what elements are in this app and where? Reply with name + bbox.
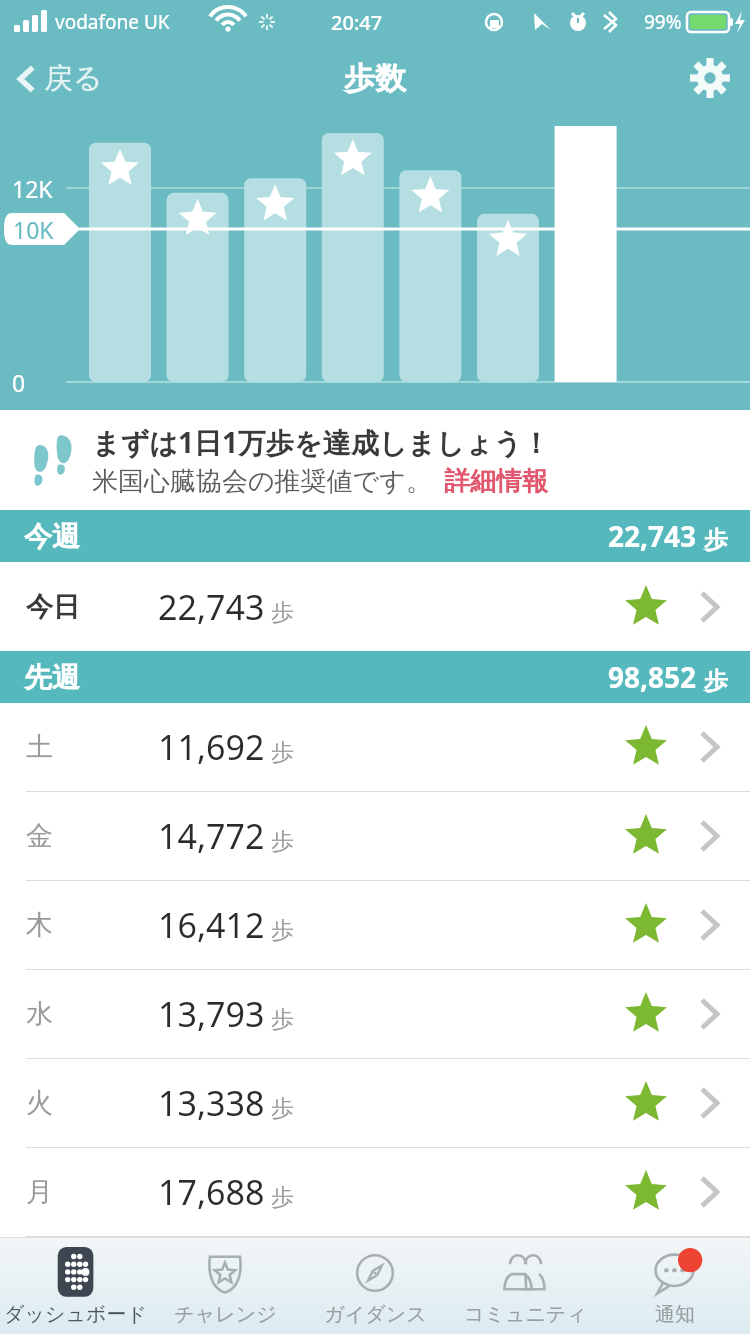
button[interactable]: チャレンジ — [150, 1238, 300, 1334]
button[interactable]: 今日 — [0, 562, 750, 651]
button[interactable]: ダッシュボード — [0, 1238, 150, 1334]
staticText: 22,743 — [608, 517, 697, 555]
button[interactable]: まずは1日1万歩を達成しましょう！ — [0, 410, 750, 510]
staticText: ガイダンス — [324, 1302, 427, 1327]
button[interactable]: 火 — [0, 1059, 750, 1147]
staticText: 今週 — [24, 519, 80, 554]
staticText: 22,743 — [158, 584, 265, 630]
button[interactable]: 土 — [0, 703, 750, 791]
staticText: 98,852 — [608, 658, 697, 696]
staticText: 17,688 — [158, 1169, 265, 1215]
staticText: 20:47 — [331, 9, 383, 36]
button[interactable]: ガイダンス — [300, 1238, 450, 1334]
staticText: 99% — [644, 9, 682, 35]
staticText: 水 — [26, 997, 53, 1031]
staticText: 歩 — [271, 598, 294, 627]
staticText: 12K — [12, 173, 53, 204]
staticText: 13,338 — [158, 1080, 265, 1126]
staticText: 歩 — [704, 525, 728, 555]
button[interactable]: 水 — [0, 970, 750, 1058]
button[interactable]: 月 — [0, 1148, 750, 1236]
staticText: 木 — [26, 908, 53, 942]
staticText: チャレンジ — [174, 1302, 277, 1327]
staticText: 米国心臓協会の推奨値です。 — [92, 465, 432, 498]
staticText: 歩 — [271, 1094, 294, 1123]
staticText: 11,692 — [158, 724, 265, 770]
staticText: ダッシュボード — [4, 1302, 147, 1327]
button[interactable]: 戻る — [0, 54, 119, 103]
staticText: 10K — [13, 214, 54, 245]
button[interactable]: 金 — [0, 792, 750, 880]
staticText: 16,412 — [158, 902, 265, 948]
button[interactable]: コミュニティ — [450, 1238, 600, 1334]
staticText: 金 — [26, 819, 53, 853]
staticText: 火 — [26, 1086, 53, 1120]
staticText: 歩 — [704, 666, 728, 696]
staticText: 戻る — [44, 60, 103, 97]
staticText: 13,793 — [158, 991, 265, 1037]
staticText: 土 — [26, 730, 53, 764]
button[interactable]: 通知 — [600, 1238, 750, 1334]
staticText: 歩 — [271, 827, 294, 856]
staticText: 月 — [26, 1175, 53, 1209]
button[interactable]: 詳細情報 — [444, 465, 548, 498]
staticText: vodafone UK — [55, 9, 170, 35]
staticText: 14,772 — [158, 813, 265, 859]
staticText: 歩 — [271, 1183, 294, 1212]
button[interactable]: Settings — [670, 48, 750, 108]
staticText: 0 — [12, 367, 26, 398]
staticText: 歩 — [271, 1005, 294, 1034]
staticText: 歩 — [271, 738, 294, 767]
button[interactable]: 木 — [0, 881, 750, 969]
staticText: 今日 — [26, 590, 80, 624]
staticText: 歩数 — [344, 59, 406, 98]
staticText: 通知 — [655, 1302, 695, 1327]
staticText: 先週 — [24, 660, 80, 695]
staticText: 歩 — [271, 916, 294, 945]
staticText: コミュニティ — [464, 1302, 587, 1327]
staticText: まずは1日1万歩を達成しましょう！ — [92, 423, 550, 461]
